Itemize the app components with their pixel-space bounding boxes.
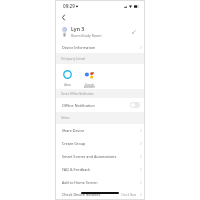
staticText: FAQ & Feedback xyxy=(62,167,140,172)
button[interactable]: Add to Home Screen xyxy=(55,176,145,189)
staticText: Room:Study Room xyxy=(71,33,102,38)
button[interactable]: Offline Notification xyxy=(55,98,145,112)
staticText: Check Now xyxy=(121,193,137,197)
staticText: Create Group xyxy=(62,141,140,146)
button[interactable]: FAQ & Feedback xyxy=(55,163,145,176)
staticText: Smart Scenes and Automations xyxy=(62,154,140,159)
staticText: Device Information xyxy=(62,45,140,50)
staticText: Check Device Network xyxy=(62,192,121,197)
staticText: 09:29 xyxy=(63,3,75,9)
staticText: Share Device xyxy=(62,128,140,133)
button[interactable]: Create Group xyxy=(55,137,145,150)
button[interactable]: Alexa xyxy=(58,70,76,87)
button[interactable]: Share Device xyxy=(55,124,145,137)
staticText: Alexa xyxy=(64,83,71,87)
button[interactable]: Lyn 3 xyxy=(55,22,145,41)
button[interactable]: Check Device Network xyxy=(55,189,145,200)
staticText: Google Assistant xyxy=(84,83,95,89)
staticText: Device Offline Notification xyxy=(61,92,94,96)
staticText: Offline Notification xyxy=(62,103,130,108)
staticText: Lyn 3 xyxy=(71,25,85,32)
staticText: Add to Home Screen xyxy=(62,180,140,185)
button[interactable]: Google Assistant xyxy=(80,70,98,89)
staticText: Third-party Control xyxy=(61,57,86,61)
button[interactable]: Smart Scenes and Automations xyxy=(55,150,145,163)
button[interactable]: Back xyxy=(58,12,68,22)
button[interactable]: Edit name xyxy=(130,28,138,36)
button[interactable]: Device Information xyxy=(55,41,145,53)
staticText: Others xyxy=(61,116,70,120)
